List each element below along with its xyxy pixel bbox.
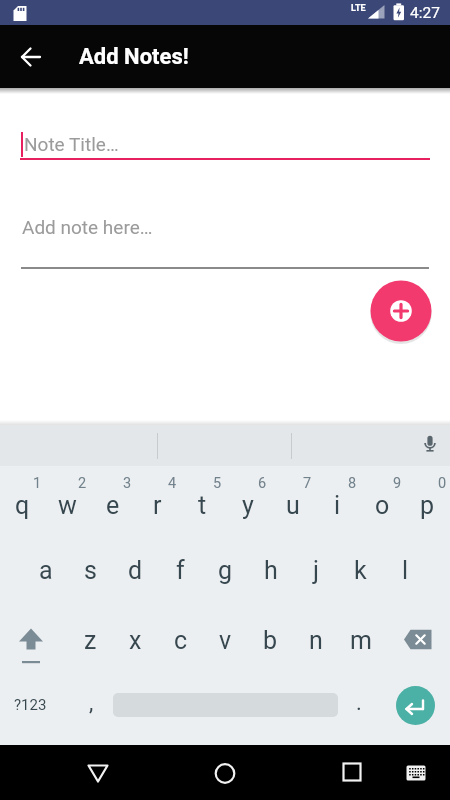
button[interactable] [0,466,45,536]
staticText: a [39,556,53,585]
button[interactable] [396,686,435,725]
button[interactable] [113,606,158,676]
button[interactable] [205,753,245,793]
button[interactable] [225,466,270,536]
button[interactable] [180,466,225,536]
staticText: 8 [348,475,357,492]
staticText: 4:27 [410,4,440,22]
button[interactable] [405,466,450,536]
staticText: 1 [33,475,42,492]
button[interactable] [18,208,432,268]
button[interactable] [248,606,293,676]
staticText: p [420,491,435,520]
staticText: w [58,491,77,520]
staticText: r [153,491,162,520]
staticText: LTE [351,3,366,14]
staticText: k [354,556,367,585]
button[interactable] [248,536,293,606]
button[interactable] [23,536,68,606]
button[interactable] [113,536,158,606]
staticText: 0 [438,475,447,492]
button[interactable] [414,428,448,462]
staticText: u [286,491,300,520]
staticText: 4 [168,475,177,492]
button[interactable] [383,536,428,606]
staticText: e [106,491,120,520]
button[interactable] [386,606,450,676]
button[interactable] [366,276,436,346]
button[interactable] [158,606,203,676]
button[interactable] [338,536,383,606]
staticText: o [375,491,390,520]
staticText: Add Notes! [79,44,189,70]
button[interactable] [332,753,372,793]
button[interactable] [18,124,432,160]
button[interactable] [396,753,436,793]
button[interactable] [270,466,315,536]
staticText: 6 [258,475,267,492]
staticText: b [263,626,278,655]
staticText: 5 [213,475,222,492]
staticText: 7 [303,475,312,492]
staticText: v [219,626,232,655]
staticText: . [356,690,362,716]
staticText: , [89,690,94,716]
staticText: 3 [123,475,132,492]
staticText: t [198,491,207,520]
staticText: d [128,556,143,585]
button[interactable] [135,466,180,536]
button[interactable] [68,536,113,606]
button[interactable] [158,536,203,606]
staticText: 9 [393,475,402,492]
staticText: Note Title… [24,133,119,155]
button[interactable] [90,466,135,536]
button[interactable] [360,466,405,536]
staticText: Add note here… [22,216,153,238]
staticText: s [84,556,97,585]
staticText: q [15,491,30,520]
button[interactable] [293,536,338,606]
button[interactable] [203,536,248,606]
button[interactable] [78,753,118,793]
button[interactable] [0,606,64,676]
staticText: n [309,626,323,655]
staticText: h [264,556,278,585]
staticText: m [350,626,372,655]
staticText: l [402,556,409,585]
button[interactable] [0,675,62,745]
button[interactable] [315,466,360,536]
staticText: 2 [78,475,87,492]
button[interactable] [338,606,383,676]
staticText: c [174,626,188,655]
staticText: z [84,626,97,655]
staticText: i [334,491,341,520]
staticText: y [242,491,254,520]
staticText: f [176,556,185,585]
button[interactable] [293,606,338,676]
staticText: x [129,626,142,655]
button[interactable] [11,37,51,77]
staticText: ?123 [14,696,47,714]
button[interactable] [45,466,90,536]
button[interactable] [203,606,248,676]
staticText: g [218,556,233,585]
staticText: j [313,556,319,585]
button[interactable] [68,606,113,676]
